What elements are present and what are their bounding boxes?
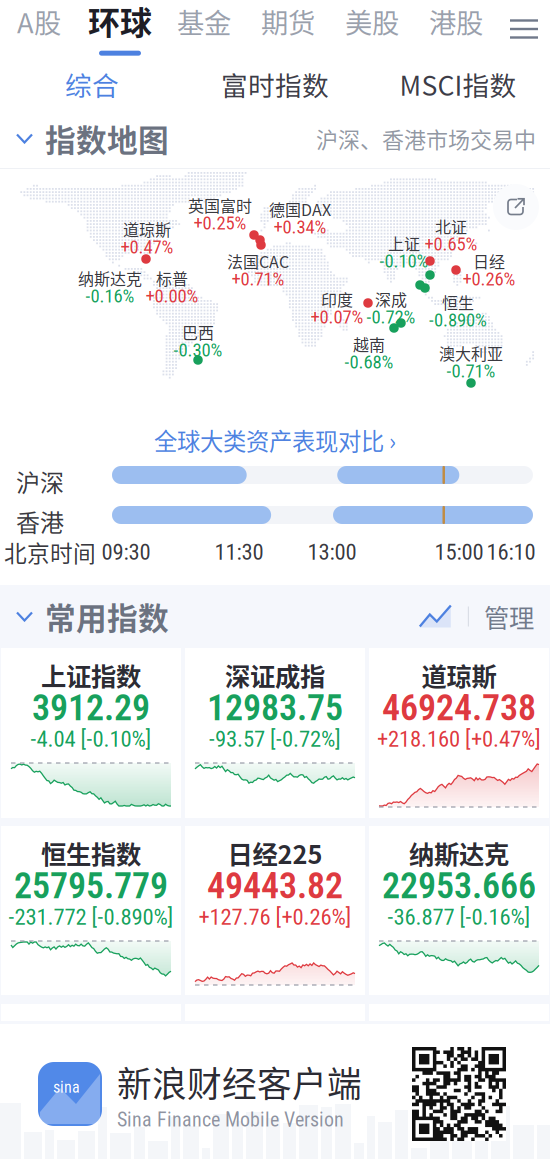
button[interactable]: 环球	[78, 0, 162, 58]
staticText: 北证	[435, 214, 467, 238]
staticText: 越南	[353, 332, 385, 356]
staticText: 新浪财经客户端	[117, 1057, 362, 1107]
button[interactable]: MSCI指数	[366, 58, 549, 110]
staticText: 港股	[429, 1, 483, 41]
button[interactable]: 全球大类资产表现对比 ›	[0, 424, 550, 456]
staticText: 全球大类资产表现对比 ›	[154, 423, 396, 457]
staticText: 美股	[345, 1, 399, 41]
staticText: 香港	[16, 504, 64, 539]
staticText: 恒生指数	[41, 835, 141, 871]
button[interactable]: Share	[493, 184, 539, 230]
staticText: -0.71%	[446, 360, 495, 382]
button[interactable]: 上证指数	[1, 648, 181, 818]
staticText: 沪深、香港市场交易中	[316, 123, 536, 154]
staticText: 管理	[484, 598, 534, 635]
button[interactable]: A股	[0, 0, 78, 58]
staticText: 常用指数	[45, 594, 169, 639]
button[interactable]: 恒生指数	[1, 826, 181, 996]
staticText: -0.10%	[379, 250, 428, 272]
staticText: 纳斯达克	[78, 266, 142, 290]
button[interactable]: 期货	[246, 0, 330, 58]
staticText: -0.890%	[429, 309, 487, 331]
staticText: 道琼斯	[123, 217, 171, 241]
staticText: 恒生	[442, 290, 474, 314]
staticText: 沪深	[16, 464, 64, 499]
staticText: -0.16%	[85, 285, 134, 307]
staticText: 环球	[88, 0, 152, 44]
staticText: 16:10	[486, 539, 535, 565]
staticText: sina	[53, 1078, 80, 1097]
staticText: 22953.666	[382, 865, 536, 907]
staticText: MSCI指数	[399, 65, 516, 103]
button[interactable]: 道琼斯	[369, 648, 549, 818]
staticText: 13:00	[307, 539, 356, 565]
staticText: +0.00%	[145, 285, 198, 307]
staticText: 日经	[473, 249, 505, 273]
staticText: +0.65%	[424, 233, 477, 255]
staticText: +0.07%	[310, 306, 363, 328]
staticText: A股	[17, 1, 61, 41]
button[interactable]: 基金	[162, 0, 246, 58]
button[interactable]: 综合	[0, 58, 183, 110]
staticText: 澳大利亚	[439, 341, 503, 365]
staticText: 日经225	[227, 835, 322, 871]
button[interactable]: 富时指数	[183, 58, 366, 110]
staticText: 11:30	[214, 539, 263, 565]
staticText: 基金	[177, 1, 231, 41]
staticText: 15:00	[434, 539, 483, 565]
button[interactable]: Menu	[498, 0, 550, 58]
staticText: +0.25%	[193, 212, 246, 234]
staticText: 3912.29	[32, 687, 150, 729]
staticText: +0.34%	[273, 216, 326, 238]
staticText: -36.877 [-0.16%]	[387, 904, 530, 930]
staticText: 指数地图	[45, 116, 169, 161]
staticText: -0.72%	[366, 306, 415, 328]
button[interactable]: 日经225	[185, 826, 365, 996]
staticText: 富时指数	[221, 65, 329, 103]
staticText: 英国富时	[188, 193, 252, 217]
staticText: 德国DAX	[269, 197, 331, 221]
staticText: -231.772 [-0.890%]	[8, 904, 173, 930]
staticText: +0.47%	[120, 236, 173, 258]
button[interactable]: 纳斯达克	[369, 826, 549, 996]
staticText: 法国CAC	[227, 249, 289, 273]
staticText: 上证指数	[41, 657, 141, 693]
staticText: 综合	[65, 65, 119, 103]
staticText: 46924.738	[382, 687, 536, 729]
staticText: -4.04 [-0.10%]	[30, 726, 151, 752]
staticText: 标普	[156, 266, 188, 290]
staticText: 纳斯达克	[409, 835, 509, 871]
button[interactable]: 管理	[419, 598, 550, 635]
button[interactable]: 港股	[414, 0, 498, 58]
button[interactable]: 美股	[330, 0, 414, 58]
button[interactable]: 深证成指	[185, 648, 365, 818]
staticText: -93.57 [-0.72%]	[209, 726, 341, 752]
staticText: 12983.75	[207, 687, 343, 729]
staticText: 深证成指	[225, 657, 325, 693]
staticText: 北京时间	[4, 536, 96, 568]
staticText: 上证	[388, 231, 420, 255]
staticText: 印度	[321, 287, 353, 311]
staticText: 深成	[375, 287, 407, 311]
staticText: +0.26%	[462, 268, 515, 290]
staticText: 09:30	[101, 539, 150, 565]
staticText: Sina Finance Mobile Version	[117, 1108, 344, 1131]
staticText: 49443.82	[207, 865, 343, 907]
staticText: +0.71%	[231, 268, 284, 290]
staticText: +127.76 [+0.26%]	[198, 904, 351, 930]
staticText: 25795.779	[14, 865, 168, 907]
staticText: 道琼斯	[421, 657, 496, 693]
staticText: 巴西	[182, 320, 214, 344]
staticText: -0.30%	[173, 339, 222, 361]
staticText: +218.160 [+0.47%]	[377, 726, 541, 752]
staticText: 期货	[261, 1, 315, 41]
staticText: -0.68%	[344, 351, 393, 373]
